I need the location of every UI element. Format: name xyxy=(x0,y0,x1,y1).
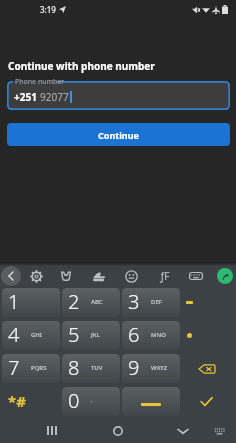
staticText: 92077 xyxy=(40,90,69,104)
button[interactable]: 8 xyxy=(62,354,120,383)
staticText: *# xyxy=(8,391,26,411)
button[interactable]: Space xyxy=(122,387,180,416)
staticText: ƒF xyxy=(160,269,170,283)
staticText: 8 xyxy=(68,354,80,381)
button[interactable]: Dash xyxy=(181,288,236,317)
staticText: PQRS xyxy=(31,364,47,372)
staticText: 4 xyxy=(8,321,20,348)
button[interactable]: Emoji xyxy=(120,266,142,286)
staticText: Continue with phone number xyxy=(8,59,155,73)
button[interactable]: Clipboard xyxy=(55,266,77,286)
button[interactable]: Back xyxy=(0,266,22,286)
button[interactable]: Home xyxy=(105,418,131,443)
staticText: JKL xyxy=(91,331,100,339)
staticText: 7 xyxy=(8,354,20,381)
staticText: 3:19 xyxy=(40,4,56,15)
staticText: 9 xyxy=(128,354,140,381)
button[interactable]: Stickers xyxy=(87,266,109,286)
button[interactable]: Enter xyxy=(181,387,236,416)
staticText: Phone number xyxy=(15,77,65,87)
button[interactable]: Hide keyboard xyxy=(206,418,232,443)
staticText: 2 xyxy=(68,288,80,315)
button[interactable]: Text format xyxy=(154,266,176,286)
button[interactable]: Continue xyxy=(7,123,230,146)
button[interactable]: +251 xyxy=(7,81,230,110)
button[interactable]: Switch keyboard xyxy=(185,266,207,286)
staticText: 6 xyxy=(128,321,140,348)
button[interactable]: 3 xyxy=(122,288,180,317)
staticText: TUV xyxy=(91,364,103,372)
staticText: Continue xyxy=(98,129,139,141)
button[interactable]: 4 xyxy=(2,321,60,350)
staticText: 5 xyxy=(68,321,80,348)
button[interactable]: 1 xyxy=(2,288,60,317)
button[interactable]: Back xyxy=(170,418,196,443)
button[interactable]: 2 xyxy=(62,288,120,317)
staticText: MNO xyxy=(151,331,166,339)
button[interactable]: Recents xyxy=(39,418,65,443)
staticText: · xyxy=(91,397,93,405)
staticText: 3 xyxy=(128,288,140,315)
staticText: +251 xyxy=(14,90,37,104)
button[interactable]: Voice input xyxy=(217,268,233,284)
staticText: WXYZ xyxy=(151,364,168,372)
button[interactable]: 0 xyxy=(62,387,120,416)
button[interactable]: *# xyxy=(1,387,61,416)
button[interactable]: Period xyxy=(181,321,236,350)
button[interactable]: 5 xyxy=(62,321,120,350)
button[interactable]: 9 xyxy=(122,354,180,383)
button[interactable]: Backspace xyxy=(181,354,236,383)
button[interactable]: 6 xyxy=(122,321,180,350)
staticText: GHI xyxy=(31,331,42,339)
button[interactable]: Settings xyxy=(25,266,47,286)
staticText: 0 xyxy=(68,387,80,414)
staticText: ABC xyxy=(91,298,103,306)
staticText: DEF xyxy=(151,298,162,306)
button[interactable]: 7 xyxy=(2,354,60,383)
staticText: 1 xyxy=(8,288,20,315)
